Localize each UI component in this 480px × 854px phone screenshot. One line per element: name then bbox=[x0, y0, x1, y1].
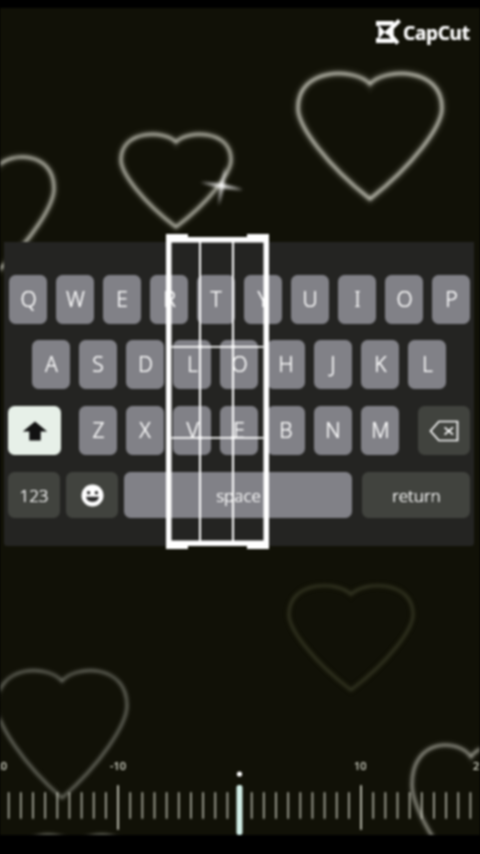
button[interactable]: L bbox=[408, 340, 446, 389]
staticText: O bbox=[396, 285, 413, 314]
staticText: N bbox=[325, 416, 341, 445]
button[interactable]: W bbox=[56, 275, 94, 324]
button[interactable]: O bbox=[385, 275, 423, 324]
staticText: W bbox=[66, 285, 85, 314]
button[interactable]: U bbox=[291, 275, 329, 324]
staticText: P bbox=[445, 285, 458, 314]
staticText: 2 bbox=[473, 758, 480, 773]
staticText: S bbox=[92, 350, 104, 379]
button[interactable]: X bbox=[126, 406, 164, 455]
staticText: I bbox=[354, 285, 361, 314]
button[interactable]: H bbox=[267, 340, 305, 389]
staticText: 123 bbox=[19, 484, 49, 507]
button[interactable]: J bbox=[314, 340, 352, 389]
staticText: -10 bbox=[110, 758, 127, 773]
staticText: R bbox=[163, 285, 176, 314]
button[interactable]: 123 bbox=[8, 472, 60, 518]
staticText: -20 bbox=[0, 758, 8, 773]
button[interactable]: N bbox=[314, 406, 352, 455]
button[interactable]: Backspace bbox=[418, 406, 470, 455]
staticText: L bbox=[422, 350, 433, 379]
button[interactable]: D bbox=[126, 340, 164, 389]
staticText: D bbox=[138, 350, 153, 379]
button[interactable]: space bbox=[124, 472, 352, 518]
button[interactable]: E bbox=[103, 275, 141, 324]
staticText: return bbox=[392, 484, 441, 507]
button[interactable]: P bbox=[432, 275, 470, 324]
button[interactable]: O bbox=[220, 340, 258, 389]
staticText: M bbox=[371, 416, 390, 445]
staticText: 10 bbox=[354, 758, 367, 773]
staticText: Q bbox=[20, 285, 37, 314]
button[interactable]: S bbox=[79, 340, 117, 389]
button[interactable]: I bbox=[338, 275, 376, 324]
staticText: X bbox=[139, 416, 151, 445]
button[interactable]: M bbox=[361, 406, 399, 455]
staticText: E bbox=[116, 285, 128, 314]
button[interactable]: B bbox=[267, 406, 305, 455]
staticText: L bbox=[187, 350, 198, 379]
button[interactable]: K bbox=[361, 340, 399, 389]
staticText: Y bbox=[257, 285, 269, 314]
button[interactable]: R bbox=[150, 275, 188, 324]
staticText: K bbox=[374, 350, 387, 379]
staticText: V bbox=[186, 416, 199, 445]
staticText: Z bbox=[92, 416, 105, 445]
staticText: E bbox=[233, 416, 245, 445]
staticText: J bbox=[330, 350, 336, 379]
button[interactable]: Z bbox=[79, 406, 117, 455]
button[interactable]: Y bbox=[244, 275, 282, 324]
staticText: U bbox=[302, 285, 318, 314]
button[interactable]: V bbox=[173, 406, 211, 455]
staticText: A bbox=[45, 350, 58, 379]
staticText: O bbox=[231, 350, 248, 379]
staticText: H bbox=[278, 350, 294, 379]
button[interactable]: T bbox=[197, 275, 235, 324]
button[interactable]: L bbox=[173, 340, 211, 389]
staticText: CapCut bbox=[403, 20, 470, 46]
button[interactable]: A bbox=[32, 340, 70, 389]
button[interactable]: Shift bbox=[8, 406, 61, 455]
button[interactable]: Emoji bbox=[66, 472, 118, 518]
staticText: B bbox=[279, 416, 293, 445]
staticText: T bbox=[210, 285, 222, 314]
button[interactable]: Q bbox=[9, 275, 47, 324]
button[interactable]: E bbox=[220, 406, 258, 455]
button[interactable]: return bbox=[362, 472, 470, 518]
staticText: space bbox=[216, 484, 261, 507]
